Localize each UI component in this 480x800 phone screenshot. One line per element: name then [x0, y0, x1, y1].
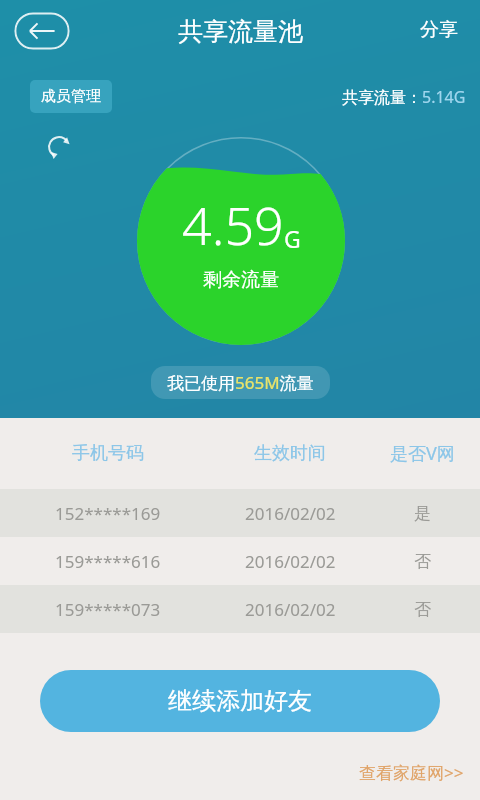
staticText: 继续添加好友	[168, 686, 312, 716]
staticText: 剩余流量	[203, 268, 279, 292]
staticText: 4.59	[182, 189, 284, 260]
staticText: 否	[414, 599, 431, 620]
button[interactable]: 我已使用565M流量	[151, 366, 330, 399]
button[interactable]: Refresh	[44, 132, 74, 162]
button[interactable]: 分享	[410, 10, 468, 50]
staticText: 2016/02/02	[245, 598, 336, 621]
staticText: 152*****169	[55, 502, 161, 525]
staticText: 2016/02/02	[245, 502, 336, 525]
staticText: 159*****616	[55, 550, 161, 573]
button[interactable]: 成员管理	[30, 80, 112, 113]
button[interactable]: 继续添加好友	[40, 670, 440, 732]
staticText: 成员管理	[41, 87, 101, 106]
staticText: 共享流量：5.14G	[342, 86, 466, 108]
staticText: 2016/02/02	[245, 550, 336, 573]
staticText: 否	[414, 551, 431, 572]
staticText: 是否V网	[390, 441, 455, 466]
staticText: G	[284, 223, 301, 254]
staticText: 159*****073	[55, 598, 161, 621]
button[interactable]: 查看家庭网>>	[349, 755, 474, 790]
staticText: 手机号码	[72, 442, 144, 465]
staticText: 是	[414, 503, 431, 524]
staticText: 共享流量池	[178, 16, 303, 47]
staticText: 生效时间	[254, 442, 326, 465]
staticText: 我已使用565M流量	[167, 371, 314, 394]
staticText: 分享	[420, 18, 458, 42]
staticText: 查看家庭网>>	[359, 761, 464, 784]
button[interactable]: Back	[14, 12, 70, 50]
